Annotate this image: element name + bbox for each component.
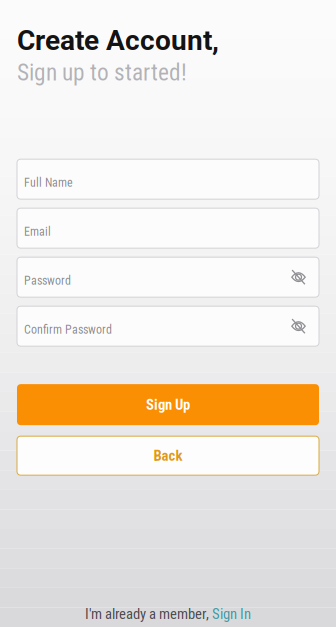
staticText: Sign up to started!: [17, 59, 187, 86]
button[interactable]: I'm already a member,: [0, 600, 336, 627]
button[interactable]: Email: [17, 208, 319, 248]
button[interactable]: Back: [17, 436, 319, 475]
staticText: Password: [24, 274, 71, 288]
button[interactable]: Full Name: [17, 159, 319, 199]
staticText: Back: [153, 447, 182, 464]
staticText: Email: [24, 225, 51, 239]
staticText: Sign In: [212, 605, 251, 623]
button[interactable]: Sign Up: [17, 384, 319, 425]
staticText: I'm already a member,: [85, 605, 209, 623]
staticText: Create Account,: [17, 24, 219, 57]
button[interactable]: Password: [17, 257, 319, 297]
button[interactable]: Confirm Password: [17, 306, 319, 346]
staticText: Confirm Password: [24, 323, 112, 337]
staticText: Sign Up: [146, 396, 190, 413]
staticText: Full Name: [24, 176, 73, 190]
